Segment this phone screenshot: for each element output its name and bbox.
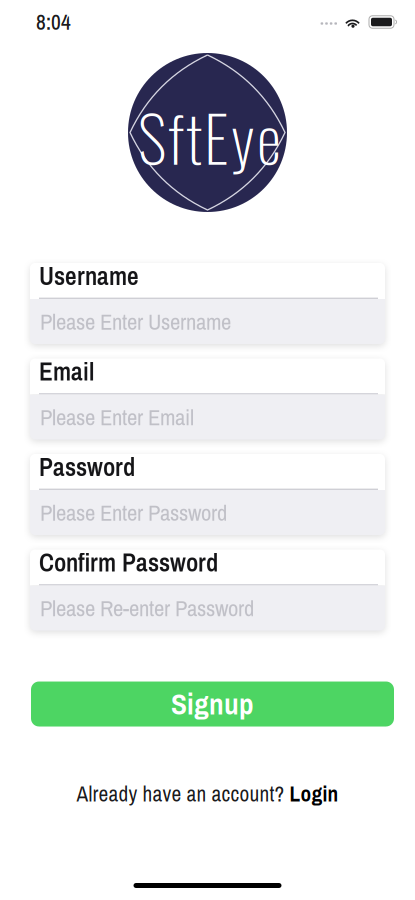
staticText: Confirm Password: [39, 545, 218, 579]
staticText: Username: [39, 259, 139, 293]
staticText: Already have an account?: [76, 779, 289, 808]
button[interactable]: Already have an account?: [76, 779, 338, 808]
staticText: SftEye: [138, 90, 281, 183]
staticText: Please Enter Email: [40, 402, 194, 432]
staticText: Please Enter Password: [40, 497, 227, 528]
staticText: Password: [39, 450, 135, 484]
staticText: Please Enter Username: [40, 306, 231, 337]
staticText: Login: [289, 779, 338, 808]
staticText: 8:04: [36, 8, 71, 36]
staticText: Email: [39, 354, 94, 388]
staticText: Please Re-enter Password: [40, 593, 254, 623]
button[interactable]: Signup: [26, 681, 389, 726]
staticText: Signup: [171, 684, 254, 724]
